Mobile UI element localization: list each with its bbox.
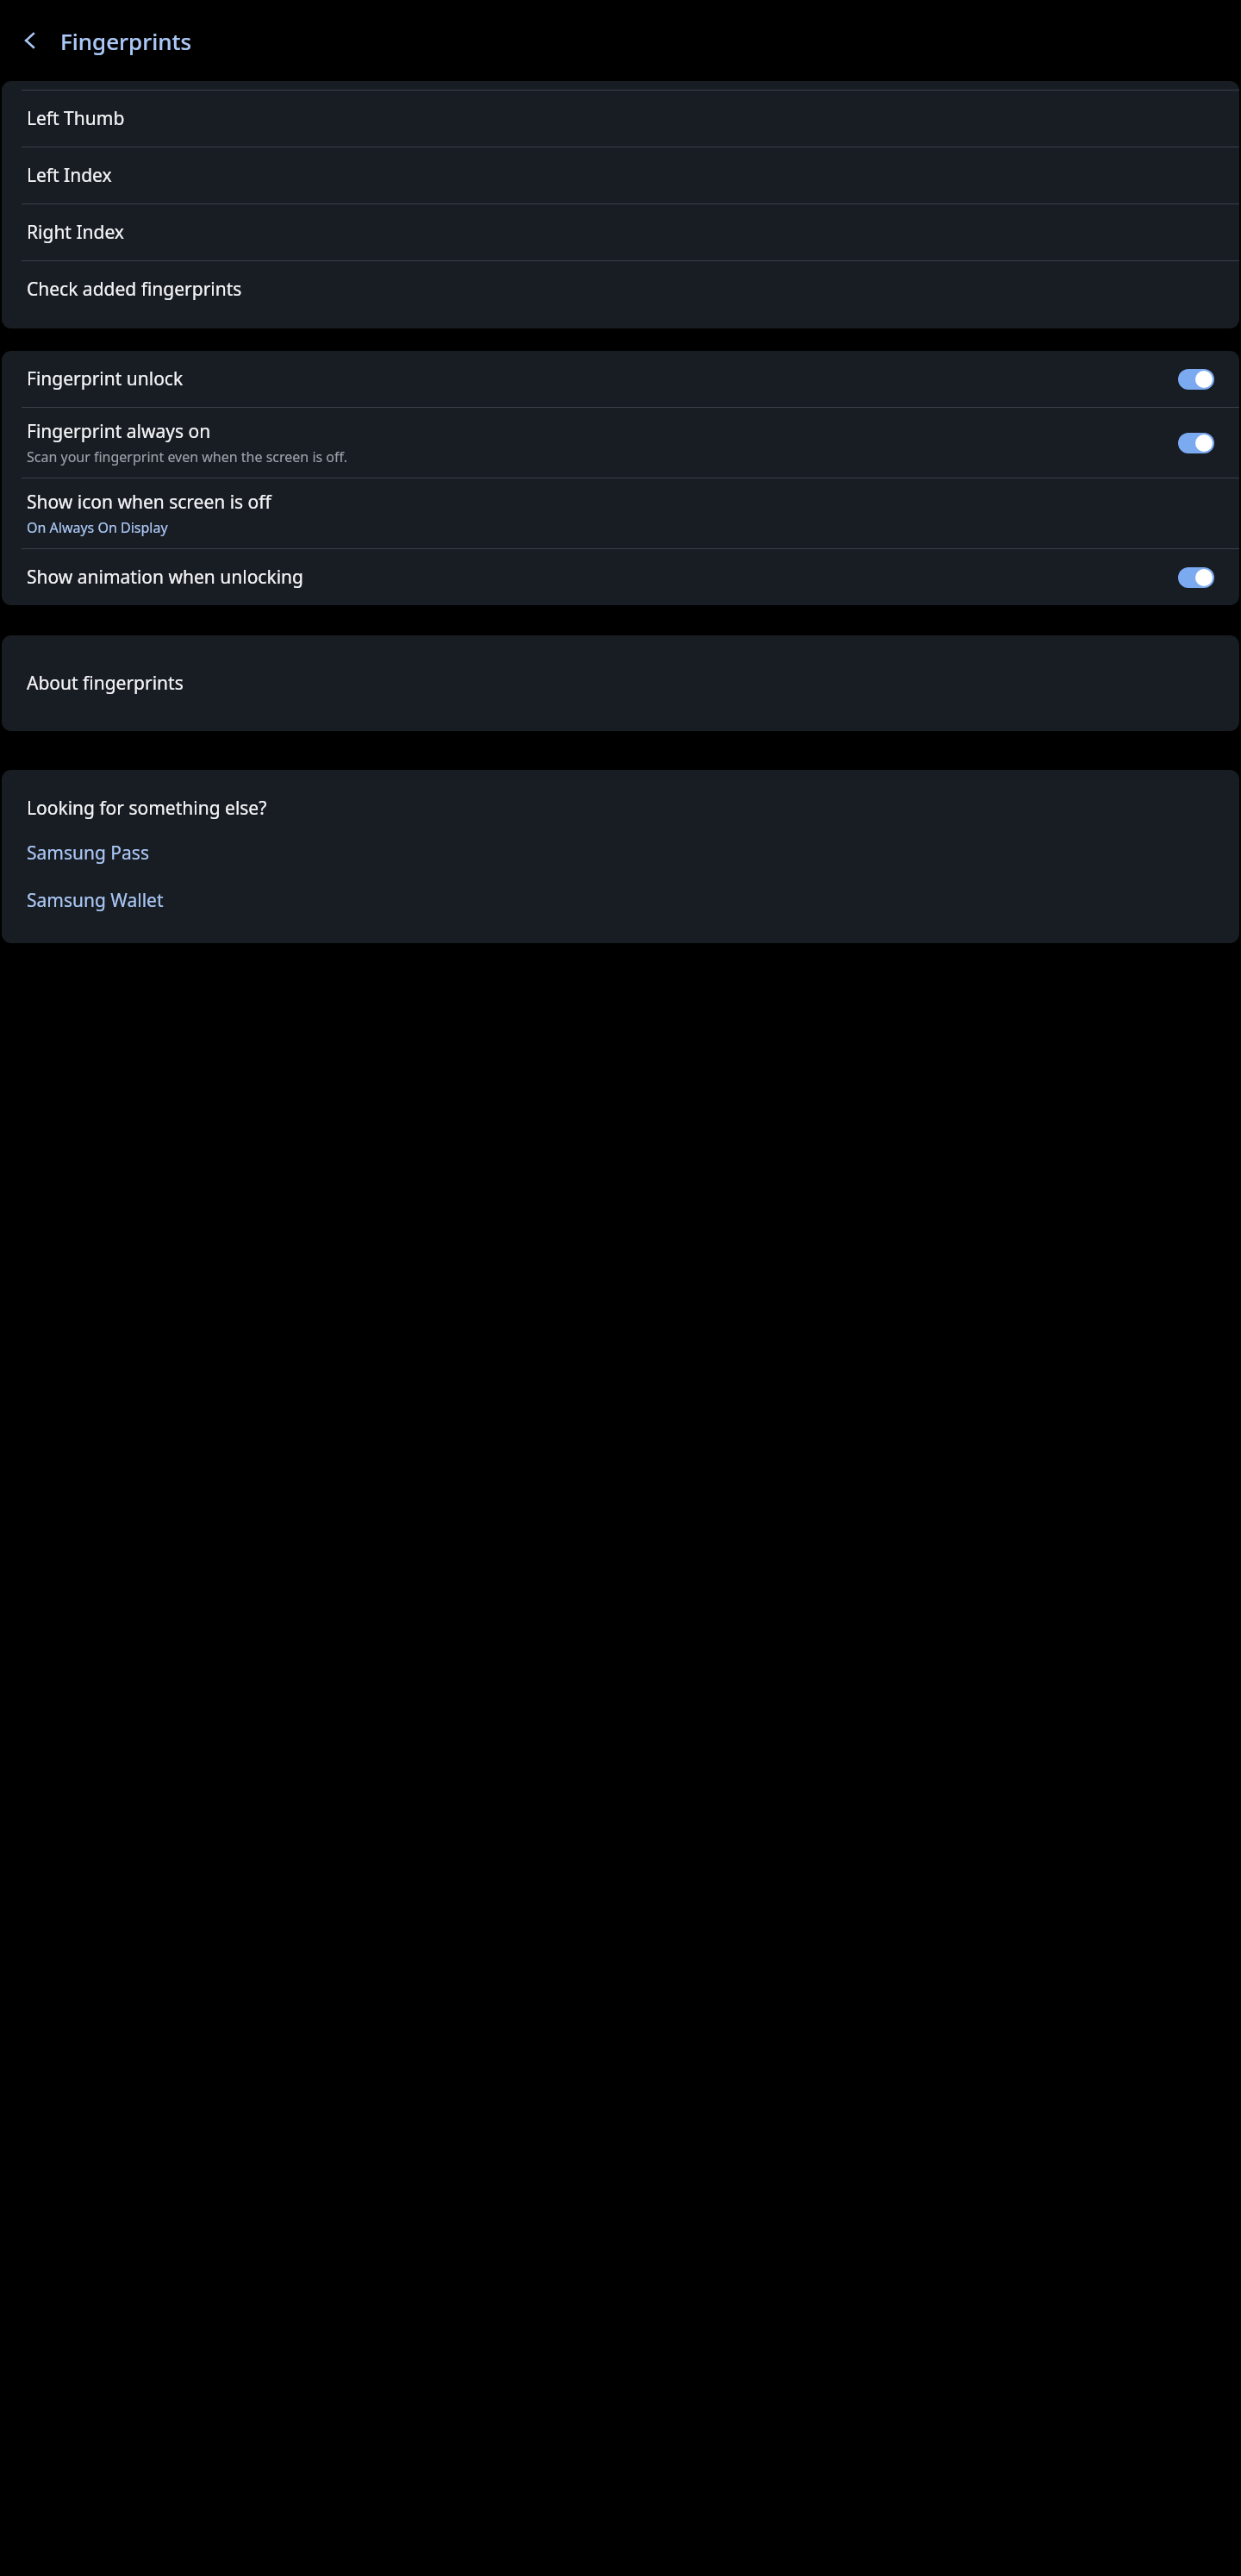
button[interactable]: Fingerprint always on <box>2 408 1239 478</box>
staticText: Fingerprints <box>60 26 192 56</box>
staticText: Show animation when unlocking <box>27 565 303 590</box>
staticText: Fingerprint unlock <box>27 366 184 391</box>
staticText: Scan your fingerprint even when the scre… <box>27 447 348 466</box>
staticText: Right Index <box>27 220 124 245</box>
button[interactable]: Toggle on <box>1178 567 1214 588</box>
button[interactable]: Fingerprint unlock <box>2 351 1239 407</box>
button[interactable]: Toggle on <box>1178 369 1214 390</box>
button[interactable]: Left Index <box>2 147 1239 203</box>
button[interactable]: About fingerprints <box>2 635 1239 731</box>
staticText: Samsung Wallet <box>27 888 164 913</box>
button[interactable]: Samsung Wallet <box>2 880 1239 921</box>
staticText: About fingerprints <box>27 671 184 696</box>
button[interactable]: Right Index <box>2 204 1239 260</box>
staticText: Fingerprint always on <box>27 419 211 444</box>
button[interactable]: Show icon when screen is off <box>2 478 1239 548</box>
button[interactable]: Show animation when unlocking <box>2 549 1239 605</box>
button[interactable]: Samsung Pass <box>2 833 1239 873</box>
staticText: Show icon when screen is off <box>27 490 271 515</box>
button[interactable]: Toggle on <box>1178 433 1214 453</box>
staticText: Looking for something else? <box>27 796 267 821</box>
staticText: On Always On Display <box>27 518 168 537</box>
staticText: Samsung Pass <box>27 841 149 866</box>
button[interactable]: Left Thumb <box>2 91 1239 147</box>
button[interactable]: Back <box>10 21 50 60</box>
staticText: Left Thumb <box>27 106 125 131</box>
staticText: Left Index <box>27 163 112 188</box>
button[interactable]: Check added fingerprints <box>2 261 1239 317</box>
staticText: Check added fingerprints <box>27 277 242 302</box>
